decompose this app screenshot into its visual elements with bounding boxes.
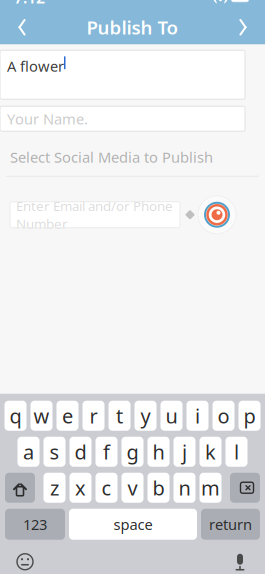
button[interactable]: q — [4, 401, 26, 431]
staticText: Your Name. — [7, 109, 88, 128]
button[interactable]: l — [225, 437, 247, 467]
staticText: A flower — [7, 56, 64, 76]
button[interactable]: Your Name. — [0, 106, 245, 131]
button[interactable]: a — [17, 437, 39, 467]
button[interactable]: p — [238, 401, 260, 431]
button[interactable]: return — [201, 509, 260, 540]
staticText: 123 — [23, 514, 47, 534]
button[interactable]: Enter Email and/or Phone Number — [10, 202, 180, 228]
staticText: j — [182, 438, 187, 465]
button[interactable]: w — [30, 401, 52, 431]
staticText: r — [89, 402, 97, 429]
staticText: h — [152, 438, 164, 465]
staticText: x — [75, 474, 86, 501]
button[interactable]: k — [199, 437, 221, 467]
staticText: c — [101, 474, 111, 501]
button[interactable]: 123 — [5, 509, 65, 540]
staticText: q — [9, 402, 21, 429]
staticText: u — [165, 402, 177, 429]
staticText: d — [74, 438, 86, 465]
button[interactable]: g — [121, 437, 143, 467]
staticText: return — [209, 514, 252, 534]
button[interactable]: b — [147, 473, 169, 503]
button[interactable]: t — [108, 401, 130, 431]
staticText: l — [234, 438, 239, 465]
button[interactable]: c — [95, 473, 117, 503]
button[interactable]: d — [69, 437, 91, 467]
button[interactable]: m — [199, 473, 221, 503]
staticText: o — [217, 402, 229, 429]
button[interactable]: h — [147, 437, 169, 467]
button[interactable]: Shift — [5, 473, 35, 503]
button[interactable]: e — [56, 401, 78, 431]
button[interactable]: v — [121, 473, 143, 503]
button[interactable]: r — [82, 401, 104, 431]
staticText: b — [152, 474, 164, 501]
staticText: n — [178, 474, 190, 501]
staticText: space — [113, 514, 152, 534]
staticText: 7:12 — [14, 0, 45, 8]
button[interactable]: Select social network — [197, 195, 237, 235]
staticText: Enter Email and/or Phone Number — [16, 197, 173, 232]
button[interactable]: space — [69, 509, 197, 540]
staticText: a — [23, 438, 34, 465]
staticText: Select Social Media to Publish — [10, 147, 213, 167]
staticText: p — [243, 402, 255, 429]
button[interactable]: f — [95, 437, 117, 467]
button[interactable]: Emoji — [10, 549, 40, 574]
button[interactable]: s — [43, 437, 65, 467]
staticText: g — [126, 438, 138, 465]
staticText: z — [50, 474, 59, 501]
button[interactable]: j — [173, 437, 195, 467]
staticText: e — [62, 402, 73, 429]
button[interactable]: Next — [221, 10, 265, 44]
staticText: i — [195, 402, 200, 429]
button[interactable]: Delete — [230, 473, 260, 503]
button[interactable]: o — [212, 401, 234, 431]
staticText: m — [201, 474, 220, 501]
button[interactable]: z — [43, 473, 65, 503]
button[interactable]: x — [69, 473, 91, 503]
staticText: Publish To — [86, 15, 178, 40]
button[interactable]: y — [134, 401, 156, 431]
button[interactable]: u — [160, 401, 182, 431]
staticText: k — [205, 438, 216, 465]
staticText: t — [116, 402, 123, 429]
staticText: y — [140, 402, 150, 429]
button[interactable]: A flower — [0, 50, 245, 99]
button[interactable]: Back — [0, 10, 44, 44]
button[interactable]: i — [186, 401, 208, 431]
staticText: f — [103, 438, 110, 465]
button[interactable]: Dictation — [225, 549, 255, 574]
staticText: w — [33, 402, 49, 429]
button[interactable]: n — [173, 473, 195, 503]
staticText: v — [127, 474, 137, 501]
staticText: s — [49, 438, 59, 465]
